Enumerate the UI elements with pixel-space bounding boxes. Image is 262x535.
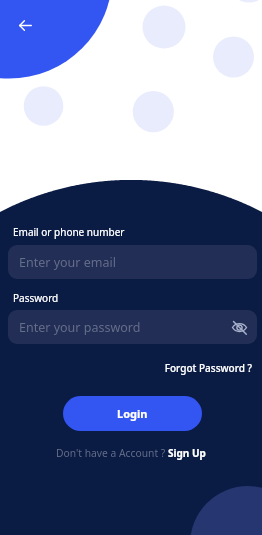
staticText: Enter your email (19, 254, 116, 271)
staticText: Enter your password (19, 319, 141, 336)
button[interactable]: Show password (230, 318, 248, 336)
staticText: Sign Up (168, 446, 206, 460)
staticText: Forgot Password ? (0, 361, 252, 375)
button[interactable]: Enter your password (8, 310, 257, 344)
button[interactable]: Back (11, 11, 39, 39)
staticText: Password (13, 291, 59, 305)
button[interactable]: Enter your email (8, 245, 257, 279)
staticText: Email or phone number (13, 225, 125, 239)
button[interactable]: Login (63, 396, 202, 431)
button[interactable]: Sign Up (168, 446, 206, 460)
staticText: Don't have a Account ? (56, 446, 168, 460)
staticText: Login (117, 406, 148, 421)
